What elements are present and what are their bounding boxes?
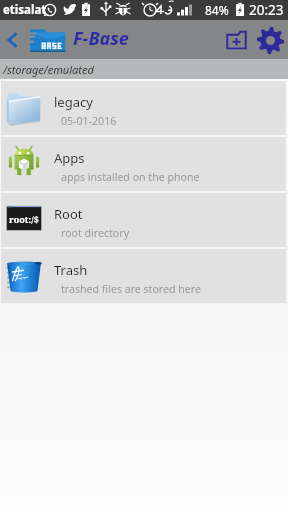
staticText: Root [54, 205, 83, 223]
staticText: Trash [54, 261, 88, 279]
staticText: trashed files are stored here [61, 282, 201, 296]
staticText: Apps [54, 149, 85, 167]
staticText: 05-01-2016 [61, 114, 117, 128]
staticText: 20:23 [249, 1, 284, 19]
button[interactable]: Trash [1, 249, 286, 303]
staticText: root:/$ [9, 213, 39, 225]
staticText: root directory [61, 226, 130, 240]
button[interactable]: Settings [253, 23, 287, 57]
button[interactable]: legacy [1, 81, 286, 135]
staticText: F-Base [73, 26, 129, 51]
staticText: 84% [205, 2, 229, 18]
button[interactable]: /storage/emulated [0, 59, 288, 79]
staticText: apps installed on the phone [61, 170, 200, 184]
button[interactable]: Back [0, 20, 26, 59]
button[interactable]: root:/$ [1, 193, 286, 247]
button[interactable]: New folder [219, 23, 253, 57]
staticText: /storage/emulated [3, 62, 94, 77]
staticText: etisalat [3, 2, 47, 18]
button[interactable]: Apps [1, 137, 286, 191]
staticText: legacy [54, 93, 93, 111]
